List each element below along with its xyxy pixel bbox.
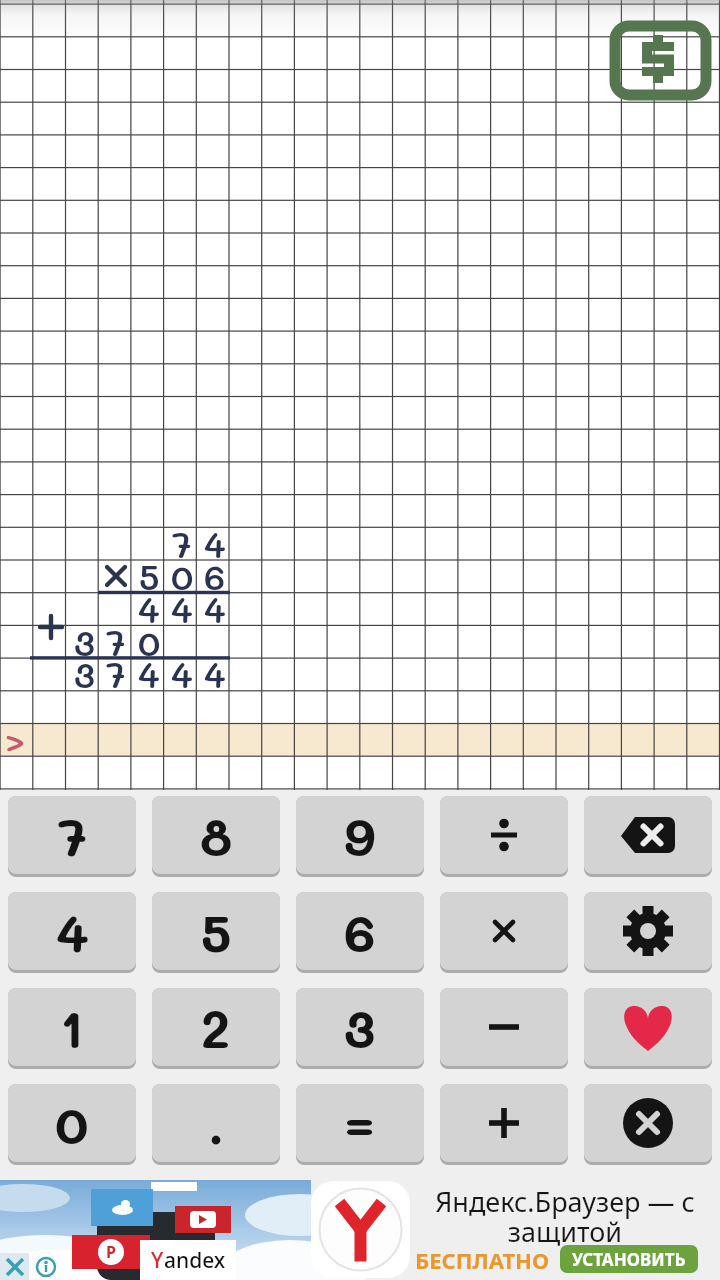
staticText: 8 bbox=[200, 801, 233, 869]
staticText: 0 bbox=[138, 619, 161, 665]
staticText: 7 bbox=[106, 651, 126, 697]
staticText: 6 bbox=[204, 553, 226, 599]
button[interactable]: 1 bbox=[8, 988, 136, 1069]
staticText: 0 bbox=[55, 1089, 89, 1157]
button[interactable] bbox=[440, 892, 568, 973]
button[interactable] bbox=[440, 1084, 568, 1165]
staticText: 5 bbox=[201, 897, 232, 965]
staticText: 4 bbox=[171, 586, 193, 632]
button[interactable] bbox=[607, 18, 709, 100]
button[interactable] bbox=[0, 723, 720, 756]
staticText: УСТАНОВИТЬ bbox=[572, 1248, 686, 1271]
staticText: 3 bbox=[74, 619, 95, 665]
staticText: 4 bbox=[56, 897, 89, 965]
button[interactable] bbox=[584, 1084, 712, 1165]
button[interactable] bbox=[584, 796, 712, 877]
staticText: 5 bbox=[139, 553, 160, 599]
button[interactable]: 6 bbox=[296, 892, 424, 973]
staticText: . bbox=[208, 1089, 225, 1157]
staticText: 9 bbox=[344, 801, 376, 869]
staticText: P bbox=[106, 1241, 116, 1263]
button[interactable]: 4 bbox=[8, 892, 136, 973]
staticText: 7 bbox=[58, 801, 87, 869]
button[interactable]: = bbox=[296, 1084, 424, 1165]
staticText: 4 bbox=[204, 651, 226, 697]
button[interactable]: 3 bbox=[296, 988, 424, 1069]
button[interactable]: 8 bbox=[152, 796, 280, 877]
staticText: 0 bbox=[171, 553, 194, 599]
staticText: 3 bbox=[74, 651, 95, 697]
button[interactable]: УСТАНОВИТЬ bbox=[560, 1245, 698, 1273]
staticText: 4 bbox=[171, 651, 193, 697]
staticText: 4 bbox=[204, 521, 226, 567]
button[interactable]: . bbox=[152, 1084, 280, 1165]
staticText: andex bbox=[164, 1246, 226, 1275]
staticText: > bbox=[5, 717, 25, 764]
button[interactable]: 7 bbox=[8, 796, 136, 877]
staticText: Яндекс.Браузер — с защитой bbox=[435, 1183, 695, 1247]
button[interactable]: 2 bbox=[152, 988, 280, 1069]
button[interactable] bbox=[440, 988, 568, 1069]
staticText: 4 bbox=[204, 586, 226, 632]
staticText: = bbox=[345, 1089, 375, 1157]
staticText: 4 bbox=[138, 586, 160, 632]
staticText: 2 bbox=[201, 993, 231, 1061]
staticText: 3 bbox=[344, 993, 376, 1061]
staticText: 4 bbox=[138, 651, 160, 697]
button[interactable]: 0 bbox=[8, 1084, 136, 1165]
button[interactable] bbox=[584, 988, 712, 1069]
staticText: 7 bbox=[106, 619, 126, 665]
button[interactable] bbox=[440, 796, 568, 877]
staticText: 6 bbox=[344, 897, 376, 965]
button[interactable]: 5 bbox=[152, 892, 280, 973]
staticText: Y bbox=[151, 1246, 164, 1275]
button[interactable]: P bbox=[0, 1180, 720, 1280]
staticText: 7 bbox=[172, 521, 192, 567]
staticText: 1 bbox=[60, 993, 84, 1061]
button[interactable] bbox=[584, 892, 712, 973]
staticText: БЕСПЛАТНО bbox=[415, 1245, 550, 1273]
button[interactable]: 9 bbox=[296, 796, 424, 877]
